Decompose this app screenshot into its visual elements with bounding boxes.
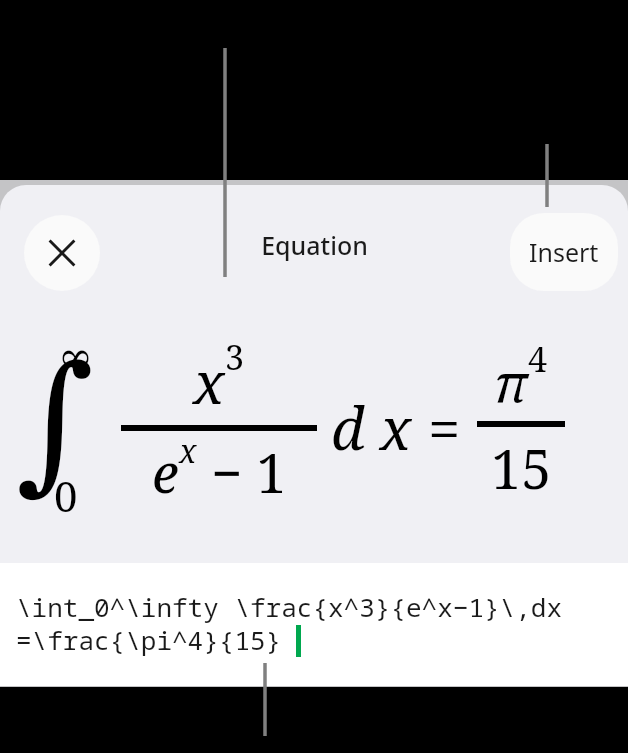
button[interactable]: Close: [24, 215, 100, 291]
staticText: \int_0^\infty \frac{x^3}{e^x−1}\,dx =\fr…: [16, 589, 563, 658]
staticText: ∫: [16, 334, 95, 509]
staticText: Insert: [529, 235, 599, 269]
button[interactable]: ∫: [0, 310, 628, 540]
staticText: 0: [54, 467, 78, 524]
staticText: x: [193, 342, 225, 421]
staticText: π: [494, 346, 528, 417]
button[interactable]: Insert: [510, 213, 618, 291]
staticText: 15: [491, 431, 552, 505]
staticText: Equation: [261, 228, 368, 262]
staticText: x: [179, 429, 197, 473]
staticText: d x: [331, 388, 412, 467]
staticText: ∞: [58, 332, 93, 381]
staticText: e: [152, 435, 179, 509]
staticText: 3: [225, 334, 245, 380]
button[interactable]: \int_0^\infty \frac{x^3}{e^x−1}\,dx =\fr…: [0, 563, 628, 686]
staticText: =: [428, 388, 461, 467]
staticText: 4: [528, 336, 548, 382]
staticText: − 1: [197, 435, 287, 509]
